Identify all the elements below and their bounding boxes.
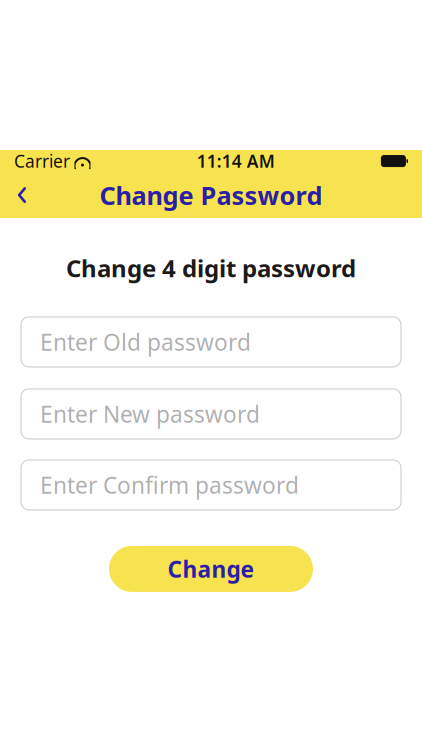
- button[interactable]: Change: [109, 546, 313, 592]
- staticText: Enter Confirm password: [40, 470, 299, 500]
- staticText: Change 4 digit password: [66, 252, 356, 284]
- staticText: Carrier: [14, 150, 70, 173]
- button[interactable]: Back: [0, 172, 44, 218]
- staticText: Enter New password: [40, 399, 260, 429]
- staticText: Enter Old password: [40, 327, 251, 357]
- staticText: 11:14 AM: [197, 150, 275, 173]
- staticText: Change: [167, 554, 254, 584]
- staticText: Change Password: [99, 178, 322, 212]
